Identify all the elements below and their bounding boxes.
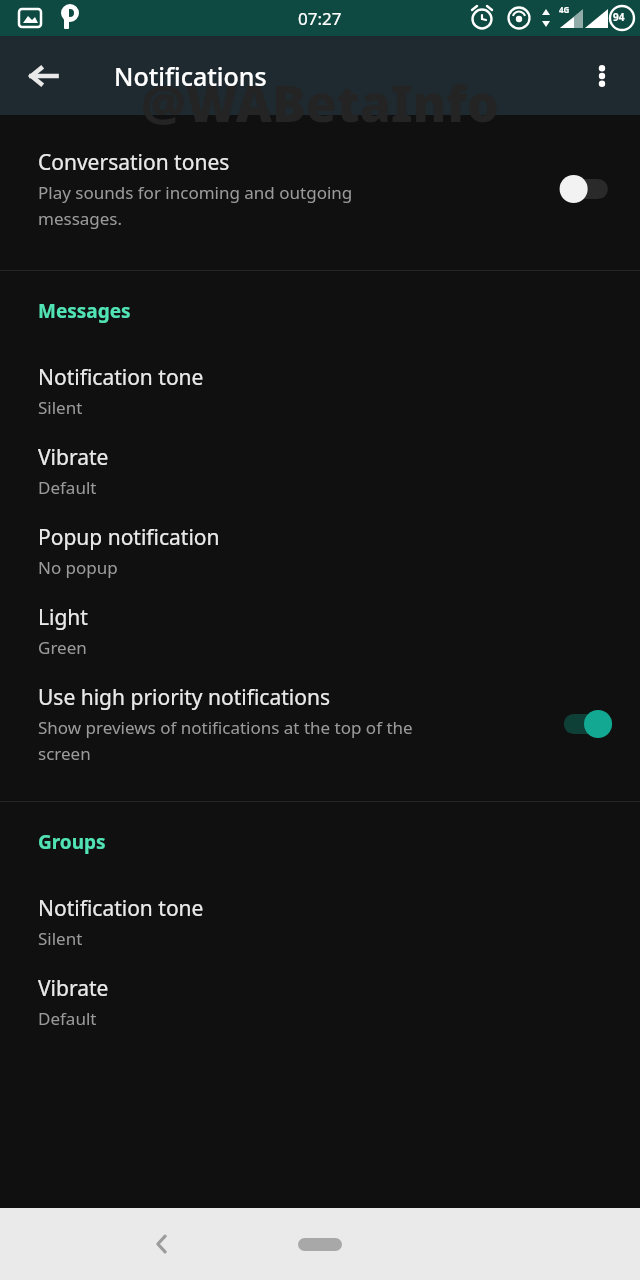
button[interactable]: More options (574, 48, 630, 104)
staticText: Use high priority notifications (38, 683, 330, 712)
button[interactable]: Home (280, 1224, 360, 1264)
staticText: Silent (38, 927, 83, 950)
staticText: Vibrate (38, 443, 109, 472)
button[interactable]: Notification tone (0, 882, 640, 962)
button[interactable]: Notification tone (0, 351, 640, 431)
staticText: No popup (38, 556, 118, 579)
staticText: @WABetaInfo (141, 69, 499, 137)
staticText: Messages (38, 298, 131, 324)
staticText: Notification tone (38, 363, 204, 392)
button[interactable]: Off (558, 171, 616, 207)
staticText: Silent (38, 396, 83, 419)
staticText: 07:27 (298, 7, 342, 30)
staticText: 94 (613, 10, 625, 24)
button[interactable]: Use high priority notifications (0, 671, 640, 777)
staticText: Default (38, 476, 97, 499)
staticText: 4G (559, 4, 570, 15)
staticText: Notification tone (38, 894, 204, 923)
button[interactable]: Light (0, 591, 640, 671)
button[interactable]: On (558, 706, 616, 742)
staticText: Show previews of notifications at the to… (38, 716, 413, 765)
staticText: Light (38, 603, 88, 632)
button[interactable]: Conversation tones (0, 136, 640, 242)
button[interactable]: Vibrate (0, 962, 640, 1042)
staticText: Notifications (114, 59, 267, 93)
button[interactable]: Popup notification (0, 511, 640, 591)
staticText: Conversation tones (38, 148, 230, 177)
button[interactable]: Back (132, 1214, 192, 1274)
staticText: Popup notification (38, 523, 220, 552)
button[interactable]: Vibrate (0, 431, 640, 511)
staticText: Default (38, 1007, 97, 1030)
staticText: Vibrate (38, 974, 109, 1003)
staticText: Play sounds for incoming and outgoing me… (38, 181, 353, 230)
button[interactable]: Back (14, 46, 74, 106)
staticText: Groups (38, 829, 106, 855)
staticText: Green (38, 636, 87, 659)
